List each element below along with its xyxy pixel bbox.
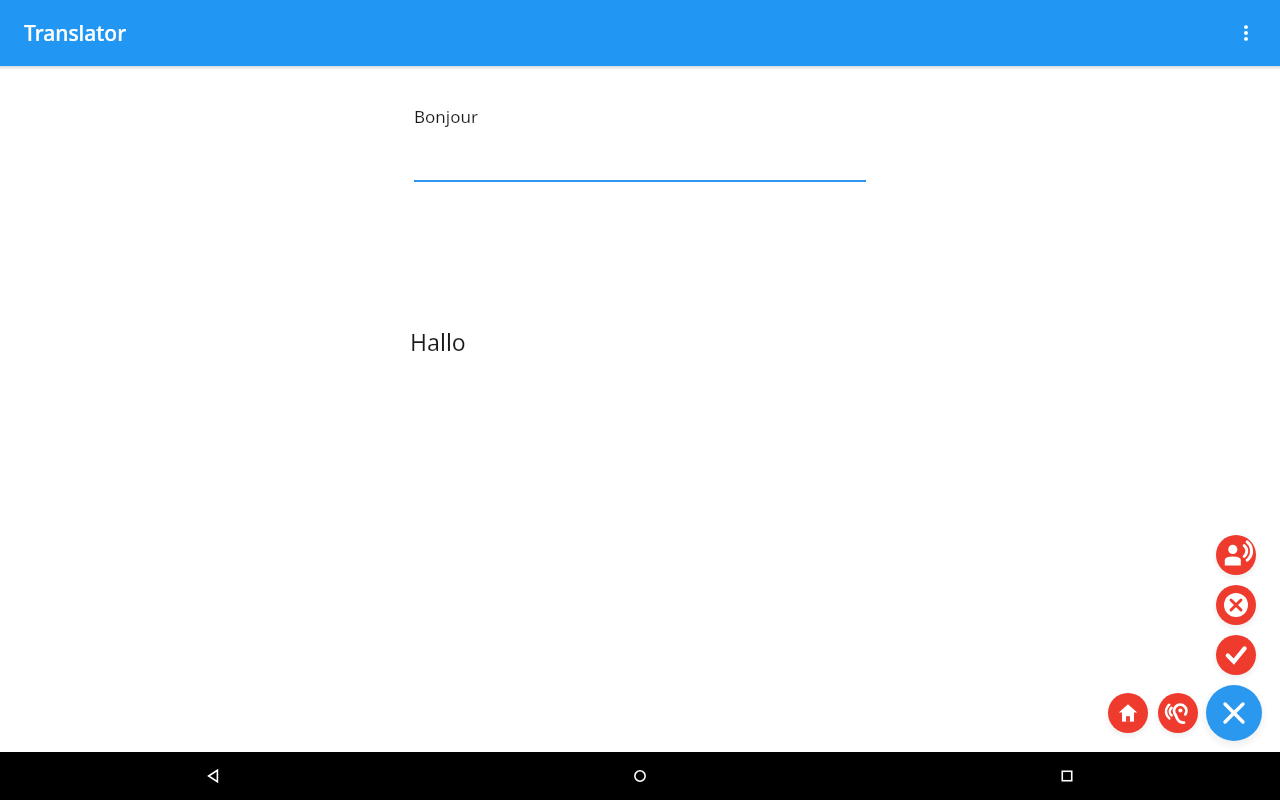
button[interactable]: Bonjour bbox=[414, 105, 866, 182]
button[interactable]: Speak translation bbox=[1216, 535, 1256, 575]
staticText: Bonjour bbox=[414, 105, 479, 128]
button[interactable]: Home bbox=[426, 752, 853, 800]
button[interactable]: Cancel bbox=[1216, 585, 1256, 625]
staticText: Hallo bbox=[410, 326, 466, 357]
button[interactable]: Confirm bbox=[1216, 635, 1256, 675]
button[interactable]: Hearing bbox=[1158, 693, 1198, 733]
button[interactable]: Back bbox=[0, 752, 426, 800]
button[interactable]: More options bbox=[1222, 9, 1270, 57]
staticText: Translator bbox=[24, 19, 127, 48]
button[interactable]: Close menu bbox=[1206, 685, 1262, 741]
button[interactable]: Recent apps bbox=[853, 752, 1280, 800]
button[interactable]: Home bbox=[1108, 693, 1148, 733]
